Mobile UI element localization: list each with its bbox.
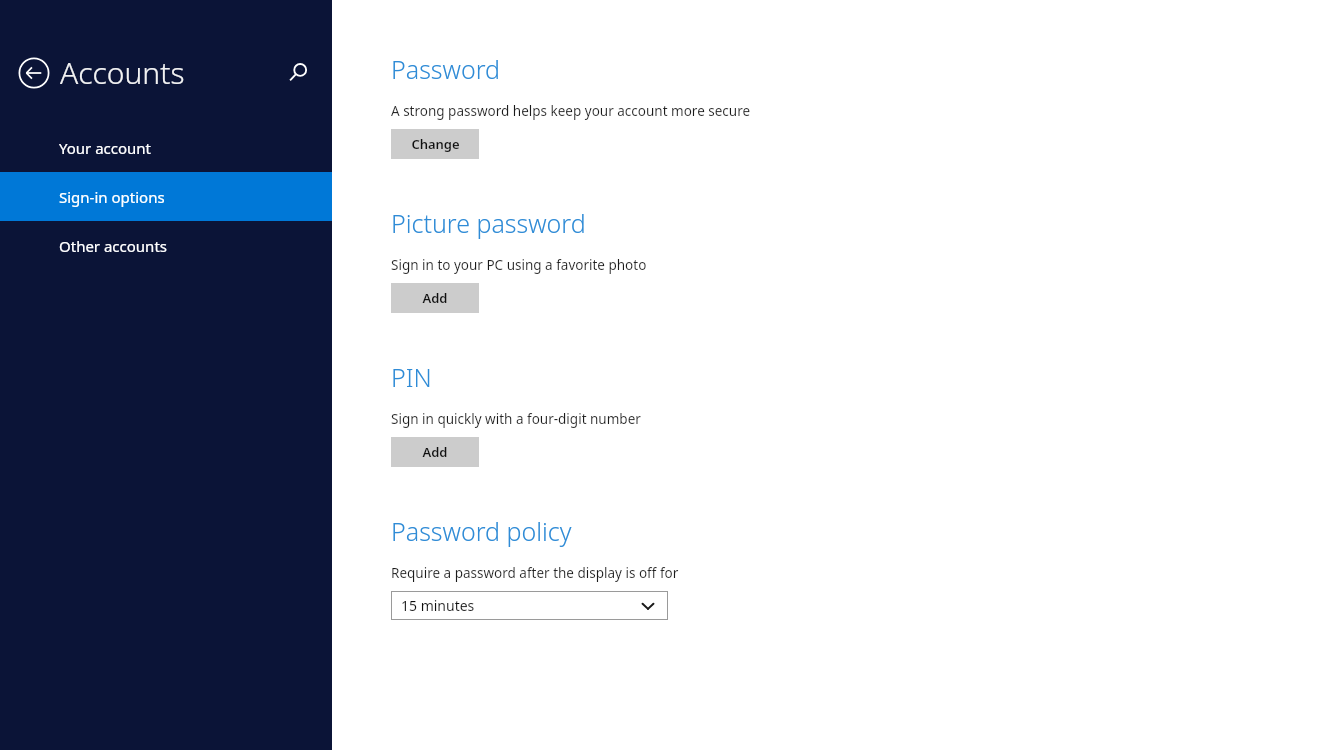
- button[interactable]: Other accounts: [0, 221, 332, 270]
- button[interactable]: Add: [391, 283, 479, 313]
- button[interactable]: Add: [391, 437, 479, 467]
- staticText: Change: [411, 135, 460, 153]
- button[interactable]: Back: [16, 55, 52, 91]
- staticText: Password: [391, 52, 500, 86]
- staticText: Other accounts: [59, 236, 167, 256]
- staticText: 15 minutes: [401, 596, 475, 615]
- button[interactable]: Search: [282, 57, 314, 89]
- staticText: Accounts: [60, 52, 185, 93]
- staticText: A strong password helps keep your accoun…: [391, 102, 751, 120]
- staticText: Password policy: [391, 514, 572, 548]
- staticText: Add: [422, 289, 448, 307]
- staticText: Require a password after the display is …: [391, 564, 679, 582]
- staticText: Sign in to your PC using a favorite phot…: [391, 256, 647, 274]
- staticText: Sign-in options: [59, 187, 165, 207]
- button[interactable]: Change: [391, 129, 479, 159]
- staticText: Picture password: [391, 206, 586, 240]
- staticText: Add: [422, 443, 448, 461]
- button[interactable]: Your account: [0, 123, 332, 172]
- staticText: Sign in quickly with a four-digit number: [391, 410, 641, 428]
- button[interactable]: 15 minutes: [391, 591, 668, 620]
- staticText: PIN: [391, 360, 432, 394]
- staticText: Your account: [59, 138, 152, 158]
- button[interactable]: Sign-in options: [0, 172, 332, 221]
